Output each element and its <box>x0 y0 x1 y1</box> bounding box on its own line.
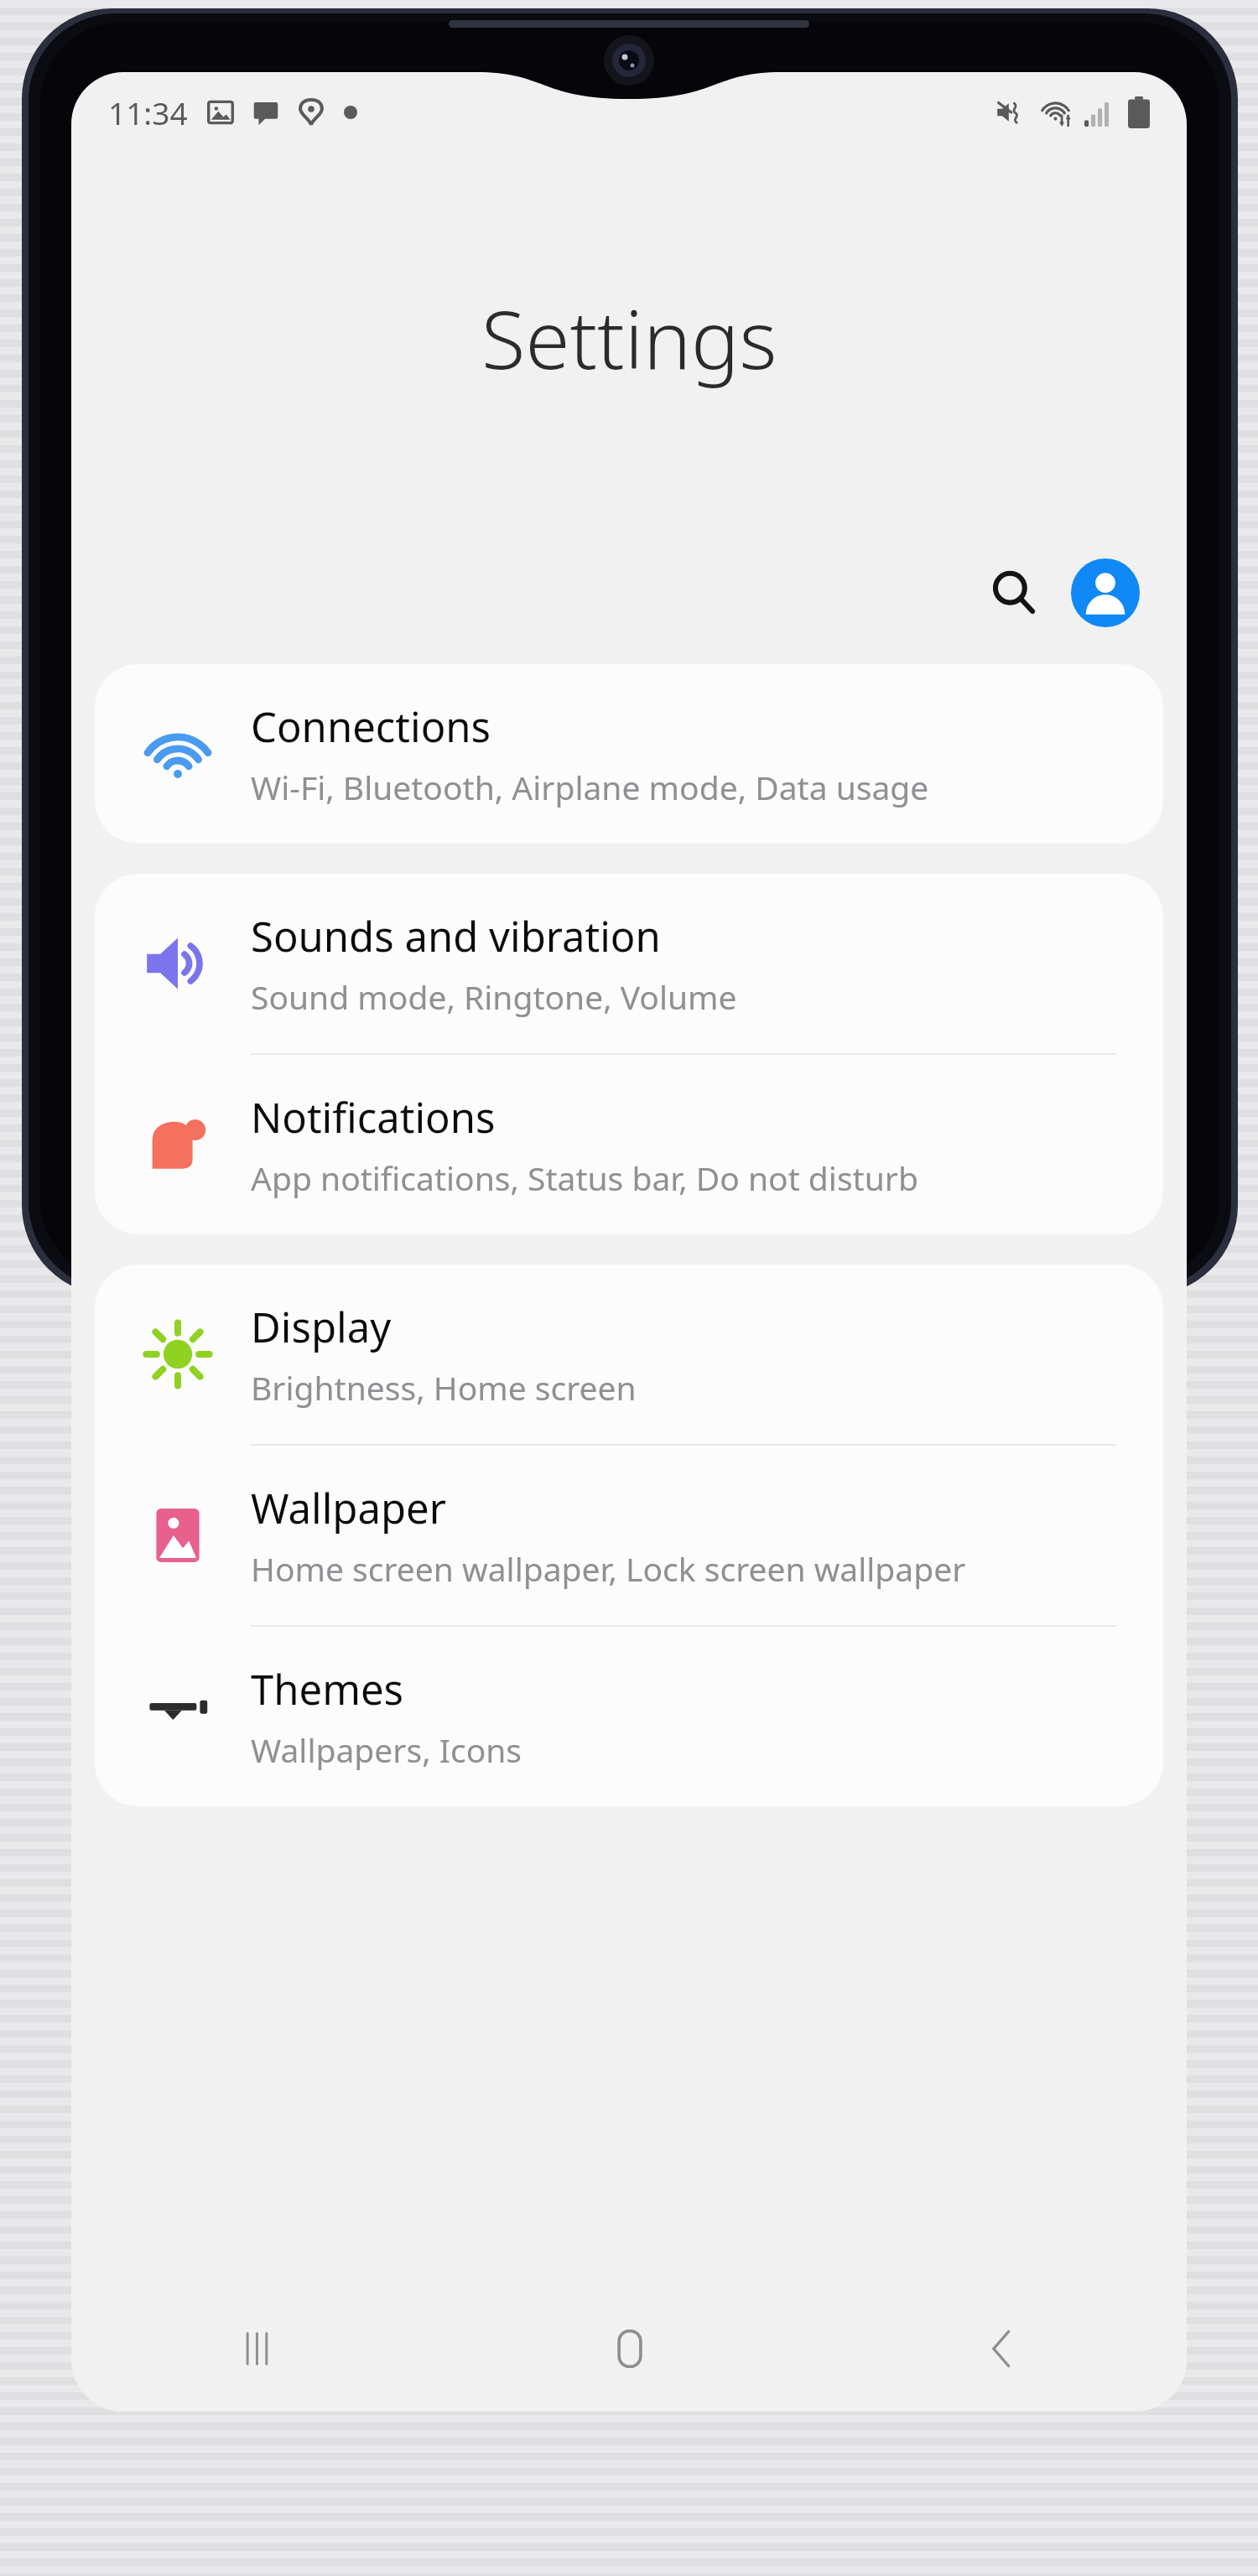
staticText: Home screen wallpaper, Lock screen wallp… <box>251 1546 966 1591</box>
staticText: Notifications <box>251 1089 496 1145</box>
button[interactable]: Sounds and vibration <box>95 874 1163 1053</box>
staticText: Wallpapers, Icons <box>251 1727 522 1772</box>
staticText: Settings <box>481 283 777 392</box>
button[interactable]: Recent apps <box>71 2286 444 2412</box>
staticText: Connections <box>251 699 491 755</box>
staticText: Sound mode, Ringtone, Volume <box>251 974 737 1019</box>
staticText: 11:34 <box>108 91 188 133</box>
staticText: Wallpaper <box>251 1480 446 1536</box>
staticText: Sounds and vibration <box>251 908 661 964</box>
staticText: Wi-Fi, Bluetooth, Airplane mode, Data us… <box>251 765 929 809</box>
staticText: Brightness, Home screen <box>251 1365 637 1410</box>
button[interactable]: Notifications <box>95 1055 1163 1234</box>
button[interactable]: Themes <box>95 1627 1163 1806</box>
staticText: App notifications, Status bar, Do not di… <box>251 1156 918 1200</box>
button[interactable]: Search settings <box>975 554 1053 631</box>
staticText: Themes <box>251 1661 404 1717</box>
button[interactable]: Home <box>444 2286 815 2412</box>
button[interactable]: Back <box>815 2286 1187 2412</box>
button[interactable]: Samsung account <box>1071 558 1140 627</box>
staticText: Display <box>251 1299 392 1355</box>
button[interactable]: Connections <box>95 664 1163 844</box>
button[interactable]: Wallpaper <box>95 1446 1163 1625</box>
button[interactable]: Display <box>95 1265 1163 1444</box>
